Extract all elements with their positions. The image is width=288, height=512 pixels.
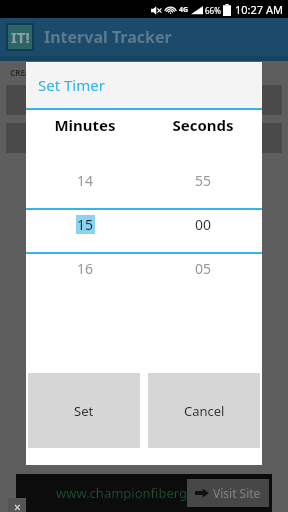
staticText: 66% <box>205 5 221 16</box>
staticText: Set <box>74 402 94 420</box>
staticText: Interval Tracker <box>44 26 172 48</box>
staticText: × <box>14 499 21 512</box>
staticText: 4G <box>179 5 189 15</box>
staticText: IT! <box>11 27 30 47</box>
button[interactable]: Cancel <box>148 373 260 448</box>
button[interactable]: 05 <box>195 259 212 278</box>
button[interactable]: Set <box>28 373 140 448</box>
button[interactable]: 15 <box>77 215 94 234</box>
staticText: 00 <box>195 215 212 234</box>
button[interactable]: 16 <box>77 259 94 278</box>
staticText: 16 <box>77 259 94 278</box>
staticText: CREATE <box>10 67 39 78</box>
staticText: 14 <box>77 171 94 190</box>
staticText: 05 <box>195 259 212 278</box>
staticText: 10:27 AM <box>235 2 283 17</box>
button[interactable]: Visit Site <box>187 479 269 507</box>
staticText: Minutes <box>26 115 144 135</box>
staticText: Cancel <box>184 402 225 420</box>
staticText: 55 <box>195 171 212 190</box>
staticText: Visit Site <box>213 485 261 501</box>
staticText: www.championfiberglas <box>56 484 204 502</box>
button[interactable]: 14 <box>77 171 94 190</box>
staticText: Set Timer <box>38 75 105 95</box>
button[interactable]: www.championfiberglas <box>16 474 272 512</box>
staticText: 15 <box>77 215 94 234</box>
button[interactable]: 55 <box>195 171 212 190</box>
button[interactable]: Close ad <box>8 498 26 512</box>
staticText: Seconds <box>144 115 262 135</box>
button[interactable]: 00 <box>195 215 212 234</box>
